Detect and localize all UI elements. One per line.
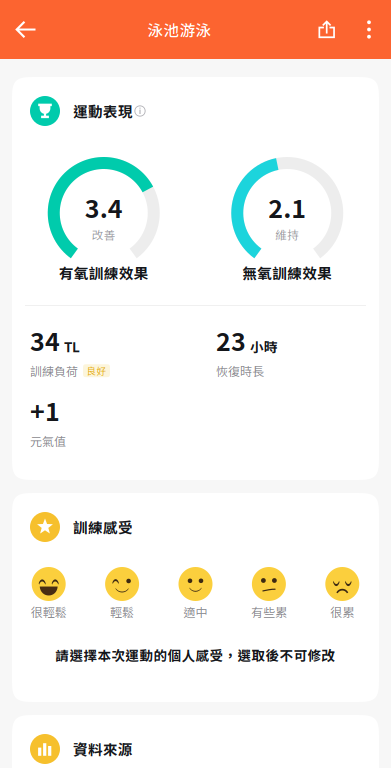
staticText: 很輕鬆 — [31, 603, 67, 620]
button[interactable]: 輕鬆 — [85, 567, 159, 620]
staticText: 訓練感受 — [73, 516, 133, 537]
staticText: 泳池游泳 — [147, 18, 211, 41]
staticText: TL — [64, 337, 80, 356]
staticText: 改善 — [92, 226, 116, 243]
button[interactable]: 有些累 — [232, 567, 306, 620]
staticText: 維持 — [275, 226, 299, 243]
staticText: 恢復時長 — [216, 362, 264, 379]
staticText: 請選擇本次運動的個人感受，選取後不可修改 — [55, 645, 335, 664]
staticText: 很累 — [330, 603, 354, 620]
staticText: 輕鬆 — [110, 603, 134, 620]
staticText: +1 — [30, 392, 60, 428]
button[interactable]: More options — [347, 0, 391, 59]
staticText: 3.4 — [85, 189, 123, 225]
staticText: 有些累 — [251, 603, 287, 620]
button[interactable]: 適中 — [159, 567, 232, 620]
button[interactable]: Share — [307, 0, 347, 59]
staticText: 訓練負荷 — [30, 362, 78, 379]
button[interactable]: 很輕鬆 — [12, 567, 85, 620]
staticText: 元氣值 — [30, 432, 66, 449]
staticText: 適中 — [183, 603, 207, 620]
staticText: 34 — [30, 322, 60, 358]
staticText: 無氧訓練效果 — [242, 262, 332, 283]
staticText: 有氧訓練效果 — [59, 262, 149, 283]
button[interactable]: Back — [0, 0, 52, 59]
button[interactable]: 很累 — [306, 567, 379, 620]
staticText: 運動表現 — [73, 100, 133, 121]
staticText: 良好 — [86, 364, 106, 378]
staticText: 小時 — [250, 337, 278, 356]
staticText: 2.1 — [268, 189, 306, 225]
staticText: 資料來源 — [73, 738, 133, 759]
staticText: 23 — [216, 322, 246, 358]
